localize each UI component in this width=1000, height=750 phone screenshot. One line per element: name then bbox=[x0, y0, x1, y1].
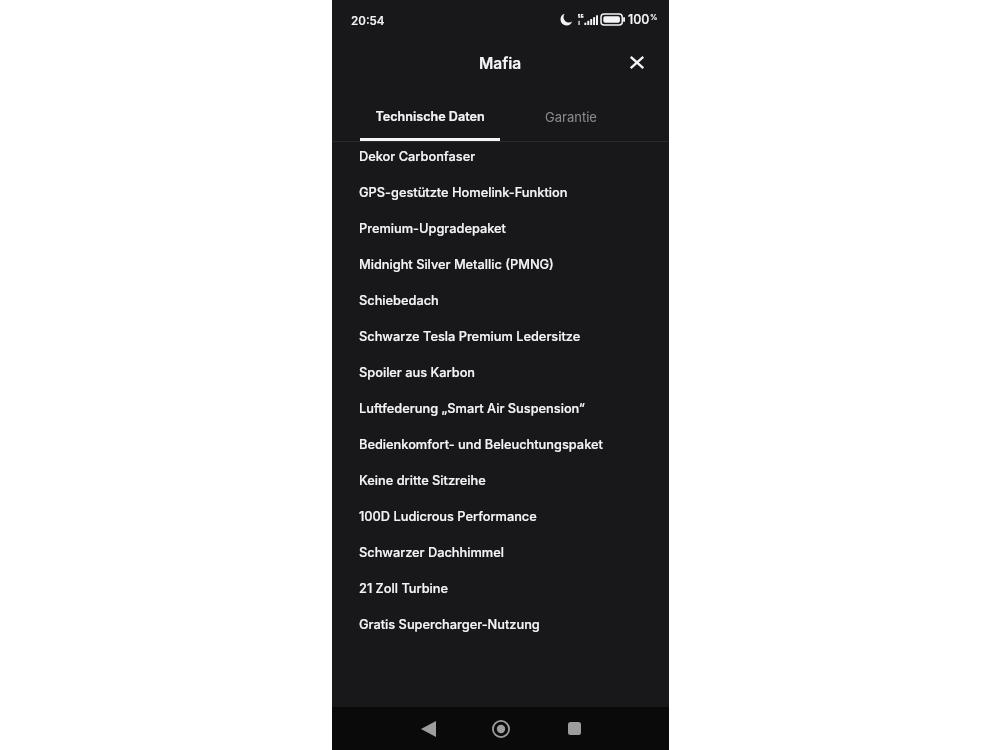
button[interactable]: Home bbox=[476, 707, 526, 750]
staticText: Mafia bbox=[479, 54, 522, 73]
button[interactable]: Schiebedach bbox=[332, 282, 669, 318]
staticText: Luftfederung „Smart Air Suspension“ bbox=[359, 401, 585, 416]
button[interactable]: Dekor Carbonfaser bbox=[332, 138, 669, 174]
staticText: 100D Ludicrous Performance bbox=[359, 509, 537, 524]
staticText: Schiebedach bbox=[359, 293, 439, 308]
staticText: 100 bbox=[628, 12, 650, 27]
staticText: Keine dritte Sitzreihe bbox=[359, 473, 486, 488]
button[interactable]: Midnight Silver Metallic (PMNG) bbox=[332, 246, 669, 282]
staticText: GPS-gestützte Homelink-Funktion bbox=[359, 185, 568, 200]
button[interactable]: Garantie bbox=[500, 87, 641, 142]
staticText: Premium-Upgradepaket bbox=[359, 221, 506, 236]
staticText: Midnight Silver Metallic (PMNG) bbox=[359, 257, 554, 272]
staticText: Technische Daten bbox=[375, 109, 485, 124]
button[interactable]: Premium-Upgradepaket bbox=[332, 210, 669, 246]
staticText: 21 Zoll Turbine bbox=[359, 581, 449, 596]
staticText: Gratis Supercharger-Nutzung bbox=[359, 617, 540, 632]
button[interactable]: Schwarze Tesla Premium Ledersitze bbox=[332, 318, 669, 354]
button[interactable]: Luftfederung „Smart Air Suspension“ bbox=[332, 390, 669, 426]
button[interactable]: Close bbox=[621, 46, 653, 78]
staticText: Schwarzer Dachhimmel bbox=[359, 545, 504, 560]
button[interactable]: 100D Ludicrous Performance bbox=[332, 498, 669, 534]
staticText: Dekor Carbonfaser bbox=[359, 149, 476, 164]
button[interactable]: Back bbox=[403, 707, 453, 750]
staticText: Schwarze Tesla Premium Ledersitze bbox=[359, 329, 581, 344]
staticText: Spoiler aus Karbon bbox=[359, 365, 476, 380]
staticText: % bbox=[650, 13, 658, 22]
button[interactable]: Schwarzer Dachhimmel bbox=[332, 534, 669, 570]
button[interactable]: Gratis Supercharger-Nutzung bbox=[332, 606, 669, 642]
button[interactable]: Bedienkomfort- und Beleuchtungspaket bbox=[332, 426, 669, 462]
button[interactable]: Spoiler aus Karbon bbox=[332, 354, 669, 390]
button[interactable]: Recent apps bbox=[549, 707, 599, 750]
button[interactable]: GPS-gestützte Homelink-Funktion bbox=[332, 174, 669, 210]
staticText: Garantie bbox=[545, 109, 597, 125]
button[interactable]: 21 Zoll Turbine bbox=[332, 570, 669, 606]
button[interactable]: Keine dritte Sitzreihe bbox=[332, 462, 669, 498]
button[interactable]: Technische Daten bbox=[360, 87, 500, 142]
staticText: Bedienkomfort- und Beleuchtungspaket bbox=[359, 437, 603, 452]
staticText: 20:54 bbox=[351, 14, 385, 28]
